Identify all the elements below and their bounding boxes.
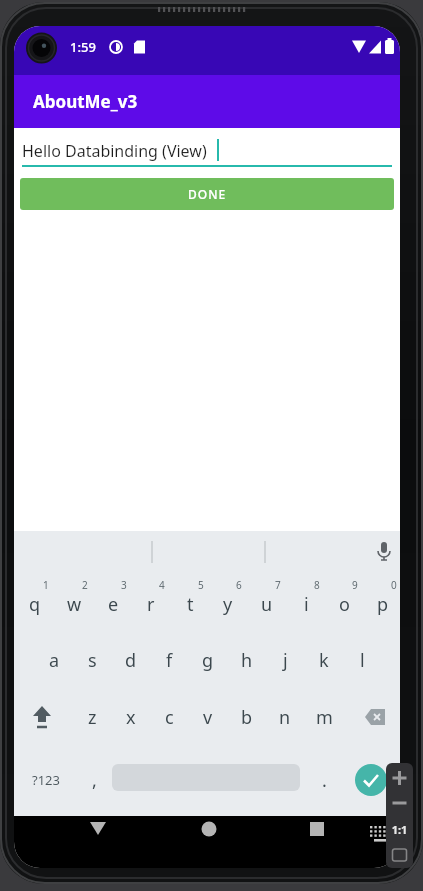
staticText: i — [304, 592, 309, 617]
staticText: a — [49, 648, 60, 673]
button[interactable] — [76, 818, 120, 846]
staticText: w — [67, 592, 82, 617]
button[interactable] — [366, 824, 396, 850]
button[interactable]: f — [150, 641, 188, 679]
staticText: f — [166, 648, 173, 673]
button[interactable] — [355, 764, 387, 796]
button[interactable]: e — [94, 585, 132, 623]
staticText: k — [319, 648, 329, 673]
staticText: b — [241, 705, 253, 730]
staticText: Hello Databinding (View) — [22, 140, 207, 162]
button[interactable]: c — [150, 698, 188, 736]
staticText: p — [377, 592, 389, 617]
button[interactable]: i — [287, 585, 325, 623]
button[interactable]: s — [73, 641, 111, 679]
staticText: 4 — [159, 578, 165, 592]
staticText: g — [202, 648, 214, 673]
button[interactable]: . — [305, 761, 343, 799]
staticText: h — [241, 648, 253, 673]
button[interactable]: h — [228, 641, 266, 679]
button[interactable] — [20, 698, 64, 736]
button[interactable] — [187, 818, 231, 846]
staticText: , — [92, 768, 97, 793]
staticText: ?123 — [32, 771, 60, 789]
staticText: 1:59 — [70, 38, 96, 56]
button[interactable]: x — [112, 698, 150, 736]
button[interactable]: k — [305, 641, 343, 679]
staticText: v — [203, 705, 213, 730]
staticText: r — [147, 592, 155, 617]
button[interactable]: d — [112, 641, 150, 679]
button[interactable]: y — [209, 585, 247, 623]
staticText: o — [339, 592, 350, 617]
button[interactable] — [295, 818, 339, 846]
button[interactable]: Hello Databinding (View) — [22, 134, 392, 167]
staticText: q — [29, 592, 41, 617]
button[interactable] — [368, 535, 400, 567]
staticText: AboutMe_v3 — [33, 90, 138, 113]
staticText: 7 — [275, 578, 281, 592]
button[interactable]: DONE — [20, 178, 394, 210]
button[interactable]: q — [16, 585, 54, 623]
staticText: 8 — [314, 578, 320, 592]
button[interactable]: ?123 — [24, 760, 68, 800]
staticText: 9 — [352, 578, 358, 592]
staticText: n — [279, 705, 291, 730]
button[interactable]: j — [266, 641, 304, 679]
button[interactable]: l — [343, 641, 381, 679]
button[interactable]: u — [248, 585, 286, 623]
button[interactable]: a — [35, 641, 73, 679]
staticText: 2 — [82, 578, 88, 592]
staticText: 5 — [198, 578, 204, 592]
button[interactable]: v — [189, 698, 227, 736]
staticText: d — [125, 648, 137, 673]
button[interactable]: p — [364, 585, 400, 623]
button[interactable]: o — [325, 585, 363, 623]
staticText: l — [360, 648, 365, 673]
staticText: 1:1 — [386, 822, 413, 837]
staticText: m — [316, 705, 333, 730]
button[interactable]: z — [73, 698, 111, 736]
staticText: j — [283, 648, 288, 673]
staticText: c — [165, 705, 174, 730]
staticText: u — [261, 592, 273, 617]
staticText: 6 — [236, 578, 242, 592]
button[interactable]: w — [55, 585, 93, 623]
staticText: y — [223, 592, 233, 617]
staticText: s — [88, 648, 97, 673]
button[interactable]: g — [189, 641, 227, 679]
staticText: DONE — [188, 186, 227, 202]
staticText: 1 — [43, 578, 49, 592]
button[interactable]: , — [75, 761, 113, 799]
staticText: . — [322, 768, 327, 793]
staticText: x — [126, 705, 136, 730]
staticText: t — [187, 592, 194, 617]
button[interactable]: t — [171, 585, 209, 623]
button[interactable]: r — [132, 585, 170, 623]
staticText: z — [88, 705, 97, 730]
button[interactable]: n — [266, 698, 304, 736]
staticText: 3 — [121, 578, 127, 592]
button[interactable] — [353, 698, 397, 736]
staticText: 0 — [391, 578, 397, 592]
button[interactable]: b — [228, 698, 266, 736]
button[interactable]: m — [305, 698, 343, 736]
staticText: e — [108, 592, 119, 617]
